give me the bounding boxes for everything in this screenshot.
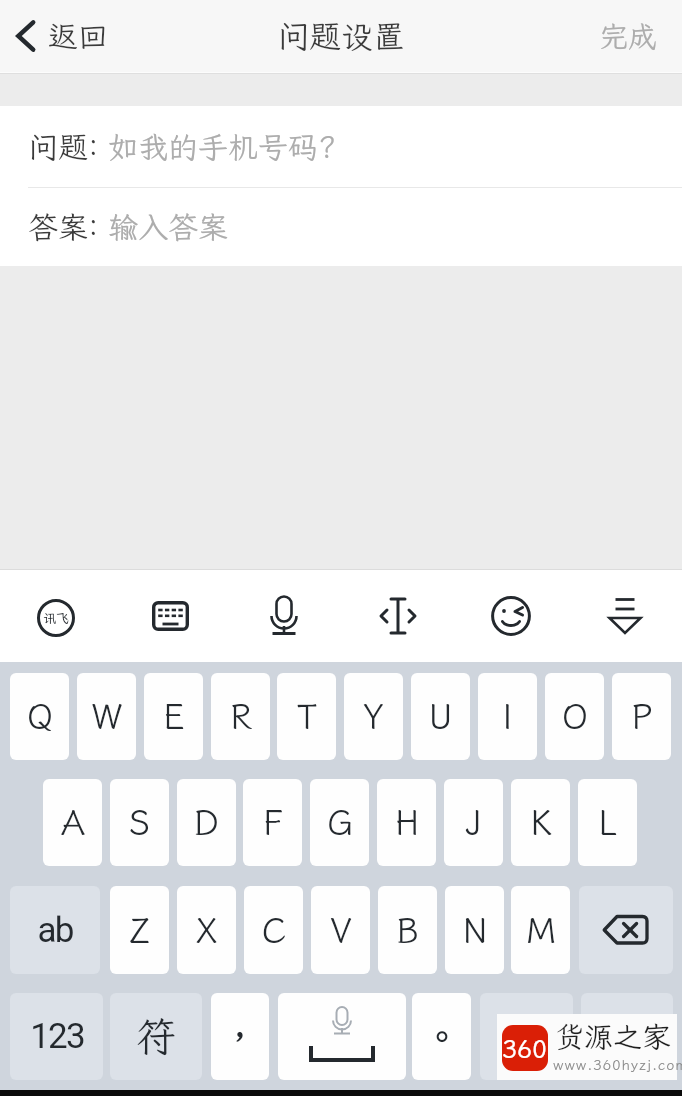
staticText: O [562,694,588,739]
button[interactable]: J [444,779,503,866]
staticText: S [129,800,150,845]
button[interactable]: G [310,779,369,866]
button[interactable]: F [243,779,302,866]
button[interactable]: I [478,673,537,760]
staticText: www.360hyzj.com [553,1055,682,1074]
staticText: D [194,800,219,845]
button[interactable]: 。 [412,993,471,1080]
button[interactable]: 完成 [575,0,682,72]
staticText: ab [37,910,73,951]
button[interactable]: N [445,886,504,974]
staticText: W [92,694,122,739]
button[interactable]: X [177,886,236,974]
button[interactable]: D [177,779,236,866]
button[interactable]: U [411,673,470,760]
button[interactable]: S [110,779,169,866]
staticText: Y [363,694,384,739]
staticText: R [230,694,252,739]
button[interactable]: W [77,673,136,760]
button[interactable]: 问题 [0,106,682,187]
staticText: 货源之家 [555,1017,672,1055]
button[interactable] [581,993,673,1080]
staticText: C [262,908,286,953]
staticText: H [395,800,419,845]
button[interactable]: Input method [16,570,96,662]
staticText: ， [220,1010,260,1063]
staticText: A [61,800,85,845]
staticText: K [530,800,552,845]
staticText: F [263,800,283,845]
staticText: N [462,908,488,953]
staticText: 123 [30,1016,84,1057]
button[interactable] [480,993,573,1080]
button[interactable]: O [545,673,604,760]
staticText: Z [129,908,150,953]
button[interactable]: V [311,886,370,974]
button[interactable]: A [43,779,102,866]
staticText: U [428,694,453,739]
staticText: I [502,694,513,739]
button[interactable]: 返回 [0,0,126,72]
staticText: M [526,908,556,953]
staticText: 问题设置 [277,15,406,57]
button[interactable]: Hide keyboard [585,570,665,662]
staticText: Q [27,694,53,739]
staticText: J [465,800,482,845]
staticText: 360 [502,1032,548,1065]
staticText: P [631,694,653,739]
other: Space [278,993,406,1080]
staticText: 输入答案 [108,207,228,247]
staticText: V [330,908,352,953]
button[interactable]: 符 [110,993,202,1080]
button[interactable]: Space [278,993,406,1080]
staticText: 讯飞 [43,610,70,627]
staticText: T [297,694,317,739]
button[interactable]: 答案 [0,188,682,266]
button[interactable]: K [511,779,570,866]
staticText: X [196,908,217,953]
other: Backspace [602,914,650,946]
button[interactable]: B [378,886,437,974]
staticText: : [88,204,99,244]
button[interactable]: ab [10,886,100,974]
button[interactable]: P [612,673,671,760]
staticText: B [396,908,419,953]
staticText: 符 [136,1010,176,1063]
button[interactable]: T [277,673,336,760]
button[interactable]: Backspace [579,886,673,974]
button[interactable]: C [244,886,303,974]
staticText: 答案 [28,207,88,247]
button[interactable]: Y [344,673,403,760]
staticText: 如我的手机号码? [108,127,336,167]
button[interactable]: H [377,779,436,866]
staticText: 问题 [28,127,88,167]
button[interactable]: Move cursor [358,570,438,662]
button[interactable]: L [578,779,637,866]
staticText: 。 [422,1010,462,1063]
staticText: E [163,694,185,739]
staticText: 返回 [48,16,108,56]
button[interactable]: Voice input [244,570,324,662]
staticText: : [88,124,99,164]
button[interactable]: ， [211,993,269,1080]
button[interactable]: Q [10,673,69,760]
button[interactable]: Z [110,886,169,974]
staticText: L [598,800,617,845]
button[interactable]: Keyboard layout [130,570,210,662]
staticText: 完成 [599,17,658,55]
button[interactable]: M [511,886,570,974]
button[interactable]: R [211,673,270,760]
button[interactable]: E [144,673,203,760]
staticText: G [327,800,353,845]
button[interactable]: 123 [10,993,103,1080]
button[interactable]: Emoji [471,570,551,662]
